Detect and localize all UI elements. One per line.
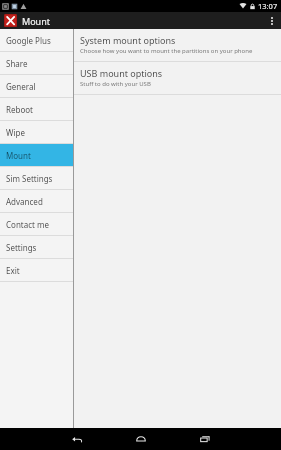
button[interactable]: Sim Settings — [0, 167, 73, 189]
button[interactable]: Share — [0, 52, 73, 74]
button[interactable]: Back — [64, 428, 90, 450]
staticText: Reboot — [6, 104, 33, 115]
button[interactable]: Mount — [0, 144, 73, 166]
staticText: Mount — [6, 150, 31, 161]
staticText: Google Plus — [6, 35, 51, 46]
staticText: Wipe — [6, 127, 25, 138]
staticText: System mount options — [80, 34, 176, 46]
staticText: Settings — [6, 242, 37, 253]
button[interactable]: System mount options — [74, 29, 281, 61]
staticText: Mount — [22, 15, 50, 27]
staticText: Exit — [6, 265, 20, 276]
staticText: Share — [6, 58, 28, 69]
staticText: General — [6, 81, 36, 92]
staticText: Choose how you want to mount the partiti… — [80, 47, 253, 55]
button[interactable]: More options — [263, 12, 281, 29]
button[interactable]: General — [0, 75, 73, 97]
staticText: Contact me — [6, 219, 50, 230]
button[interactable]: Recent apps — [192, 428, 218, 450]
staticText: USB mount options — [80, 67, 163, 79]
button[interactable]: USB mount options — [74, 62, 281, 94]
button[interactable]: Settings — [0, 236, 73, 258]
staticText: Sim Settings — [6, 173, 53, 184]
button[interactable]: Reboot — [0, 98, 73, 120]
button[interactable]: App icon, navigate up — [4, 14, 17, 27]
button[interactable]: Home — [128, 428, 154, 450]
staticText: 13:07 — [258, 1, 278, 11]
button[interactable]: Exit — [0, 259, 73, 281]
button[interactable]: Contact me — [0, 213, 73, 235]
button[interactable]: Advanced — [0, 190, 73, 212]
button[interactable]: Wipe — [0, 121, 73, 143]
staticText: Advanced — [6, 196, 43, 207]
staticText: Stuff to do with your USB — [80, 80, 151, 88]
button[interactable]: Google Plus — [0, 29, 73, 51]
